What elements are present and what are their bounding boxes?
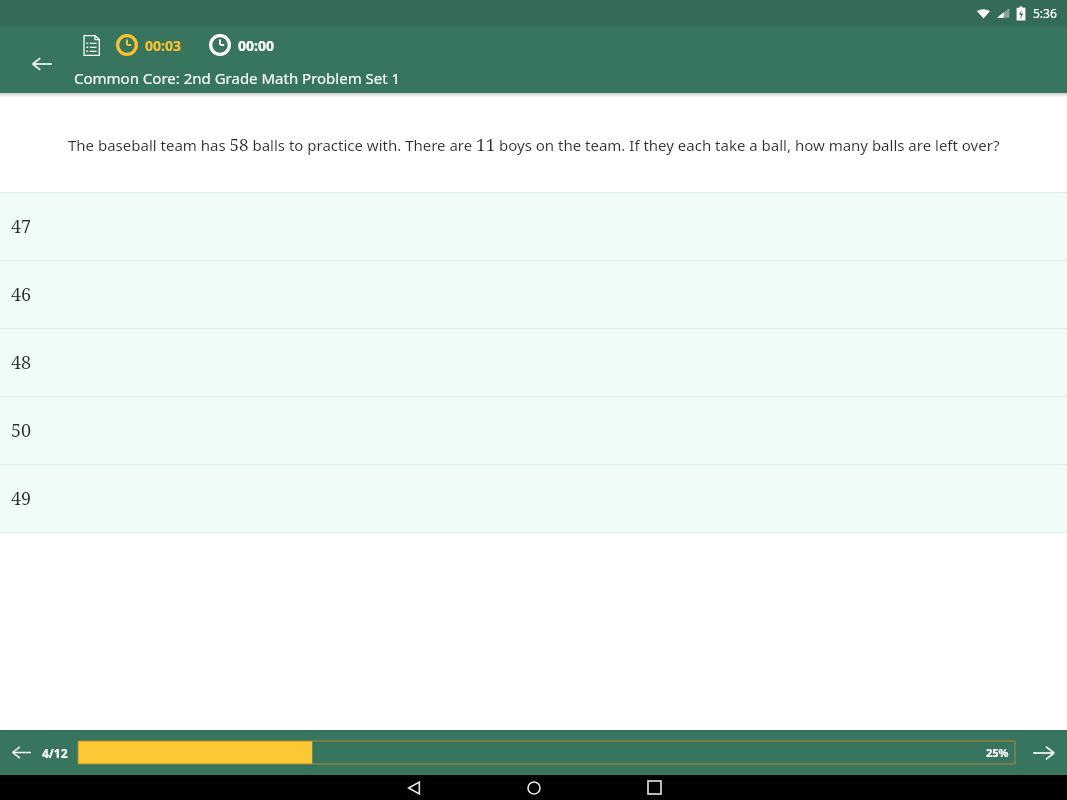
button[interactable]: Next question [1021,730,1067,775]
button[interactable]: 00:03 [116,34,181,56]
staticText: 4/12 [42,745,68,761]
staticText: 25% [986,745,1009,760]
button[interactable]: Recent apps [594,775,714,800]
button[interactable]: Back [18,40,66,88]
button[interactable]: 00:00 [209,34,274,56]
staticText: The baseball team has 58 balls to practi… [68,133,1000,156]
staticText: 48 [11,350,32,375]
button[interactable]: Previous question [0,730,42,775]
staticText: 50 [11,418,32,443]
button[interactable]: 50 [0,397,1067,464]
button[interactable]: 46 [0,261,1067,328]
staticText: 00:00 [238,36,274,55]
button[interactable]: 48 [0,329,1067,396]
staticText: 47 [11,214,32,239]
staticText: 00:03 [145,36,181,55]
button[interactable]: 47 [0,193,1067,260]
button[interactable]: Back [354,775,474,800]
button[interactable]: 49 [0,465,1067,532]
button[interactable]: Question list [76,30,106,60]
staticText: 49 [11,486,32,511]
staticText: Common Core: 2nd Grade Math Problem Set … [74,68,401,88]
staticText: 46 [11,282,32,307]
staticText: 5:36 [1033,5,1057,21]
button[interactable]: Home [474,775,594,800]
